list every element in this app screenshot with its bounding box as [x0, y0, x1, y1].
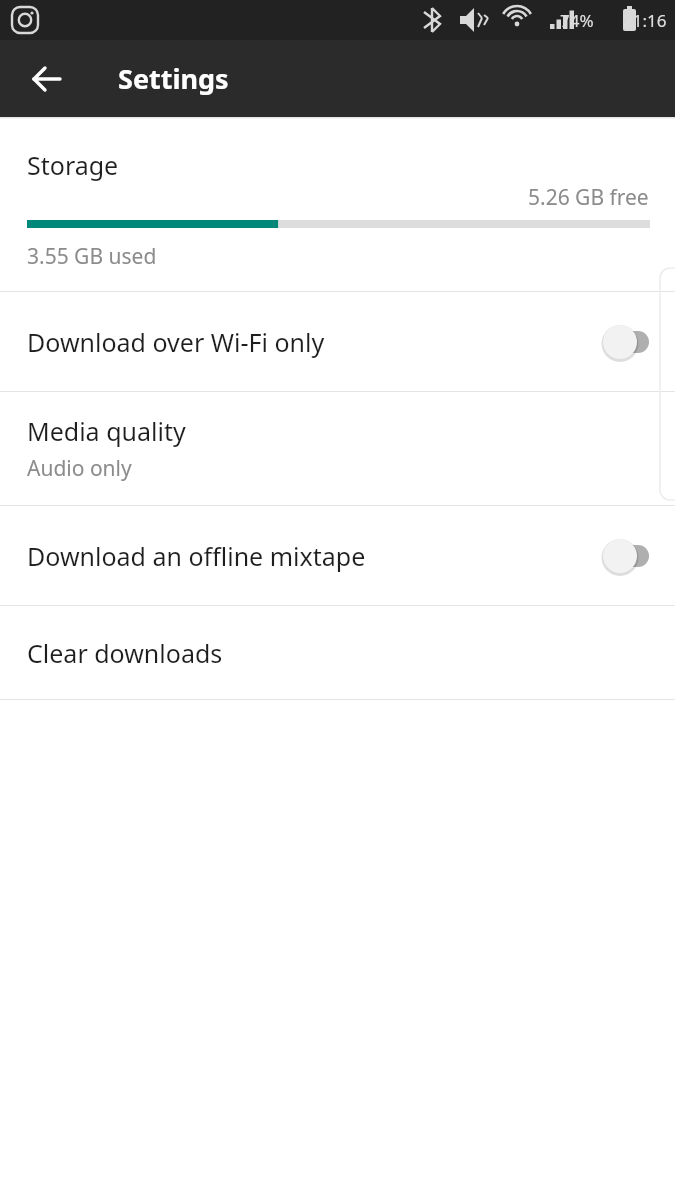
- staticText: Download an offline mixtape: [27, 539, 587, 573]
- button[interactable]: Download over Wi-Fi only: [0, 292, 675, 391]
- staticText: 21:16: [623, 9, 667, 32]
- button[interactable]: Storage: [0, 120, 675, 291]
- staticText: Settings: [118, 60, 229, 97]
- staticText: 74%: [560, 9, 594, 32]
- staticText: 3.55 GB used: [27, 242, 157, 271]
- button[interactable]: Back: [14, 46, 80, 112]
- button[interactable]: Download an offline mixtape: [0, 506, 675, 605]
- staticText: Audio only: [27, 454, 132, 483]
- staticText: 5.26 GB free: [528, 183, 649, 212]
- button[interactable]: Clear downloads: [0, 606, 675, 699]
- staticText: Media quality: [27, 414, 186, 448]
- staticText: Storage: [27, 148, 119, 182]
- staticText: Download over Wi-Fi only: [27, 325, 587, 359]
- staticText: Clear downloads: [27, 636, 223, 670]
- button[interactable]: Media quality: [0, 392, 675, 505]
